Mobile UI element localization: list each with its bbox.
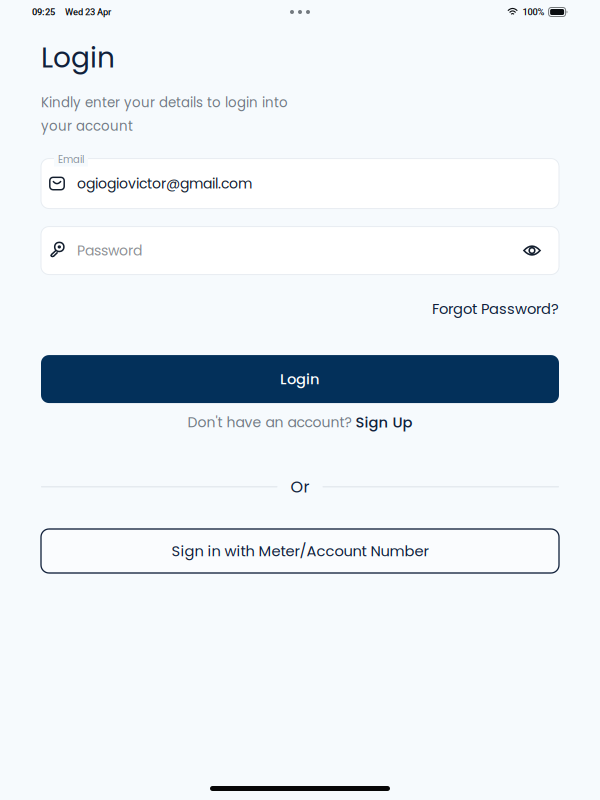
staticText: 100% [523,6,545,17]
button[interactable]: Sign Up [355,412,412,433]
staticText: Don't have an account? [187,412,355,432]
staticText: 09:25 [32,6,55,17]
button[interactable]: Forgot Password? [432,298,559,319]
button[interactable]: Show password [519,237,545,263]
staticText: Or [290,476,309,498]
staticText: Wed 23 Apr [65,6,111,17]
staticText: Kindly enter your details to login into … [41,93,288,135]
staticText: Password [77,241,142,260]
staticText: Sign Up [355,412,412,433]
button[interactable]: Login [41,355,559,403]
button[interactable]: Sign in with Meter/Account Number [41,529,559,573]
staticText: Login [280,369,320,389]
staticText: ogiogiovictor@gmail.com [77,174,252,193]
staticText: Sign in with Meter/Account Number [171,541,428,561]
staticText: Forgot Password? [432,298,559,319]
staticText: Email [58,152,84,166]
staticText: Login [41,38,115,77]
